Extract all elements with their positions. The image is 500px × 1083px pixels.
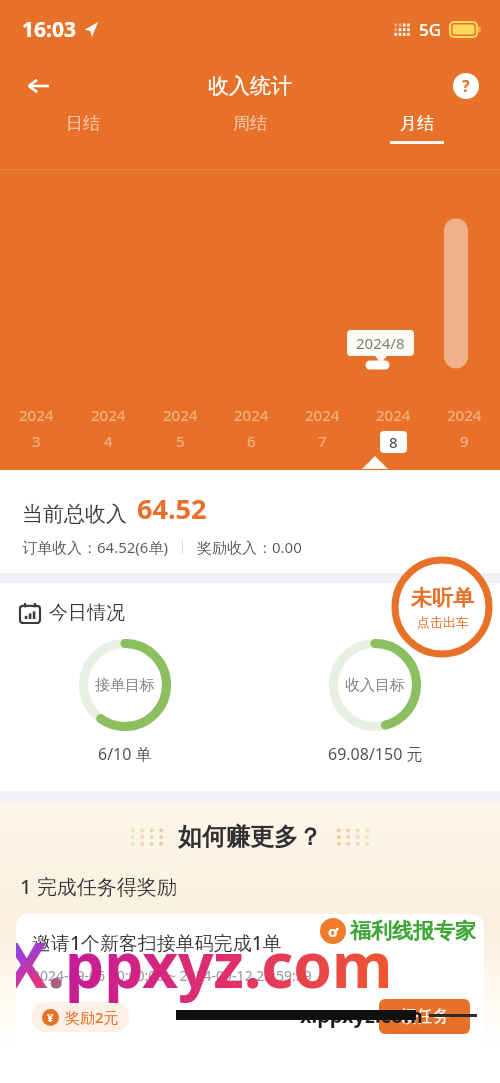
- button[interactable]: 2024: [72, 405, 144, 451]
- staticText: ppxyz.com: [65, 922, 393, 1006]
- staticText: 2024: [163, 405, 198, 425]
- button[interactable]: 2024: [429, 405, 500, 451]
- staticText: 领任务: [399, 1006, 450, 1027]
- button[interactable]: 邀请1个新客扫接单码完成1单: [16, 914, 484, 1048]
- staticText: ?: [462, 75, 470, 97]
- staticText: 7: [318, 431, 327, 451]
- staticText: 奖励2元: [65, 1007, 119, 1027]
- button[interactable]: 未听单: [390, 555, 494, 659]
- staticText: 接单目标: [95, 676, 155, 695]
- staticText: 点击出车: [417, 614, 469, 630]
- button[interactable]: 接单目标: [0, 639, 250, 765]
- staticText: 1 完成任务得奖励: [20, 873, 177, 900]
- button[interactable]: Back: [16, 64, 60, 108]
- staticText: 2024: [234, 405, 269, 425]
- staticText: 16:03: [22, 15, 76, 44]
- staticText: 月结: [400, 113, 434, 134]
- staticText: 9: [460, 431, 469, 451]
- staticText: 6/10 单: [98, 743, 152, 765]
- staticText: 5: [176, 431, 185, 451]
- button[interactable]: 月结: [333, 113, 500, 144]
- button[interactable]: 领任务: [399, 1006, 450, 1027]
- staticText: 日结: [66, 113, 100, 134]
- button[interactable]: 日结: [0, 113, 166, 144]
- staticText: ¥: [47, 1010, 54, 1025]
- staticText: 2024: [91, 405, 126, 425]
- button[interactable]: 2024: [287, 405, 358, 451]
- staticText: 邀请1个新客扫接单码完成1单: [32, 930, 282, 956]
- button[interactable]: Help: [446, 66, 486, 106]
- staticText: 8: [389, 432, 398, 452]
- button[interactable]: 2024: [358, 405, 429, 453]
- staticText: 奖励收入：0.00: [197, 537, 302, 557]
- staticText: 未听单: [411, 585, 474, 611]
- staticText: 收入目标: [345, 676, 405, 695]
- staticText: 69.08/150 元: [328, 743, 423, 765]
- staticText: 如何赚更多？: [178, 822, 322, 852]
- staticText: 收入统计: [208, 73, 292, 99]
- staticText: 今日情况: [49, 601, 125, 625]
- staticText: X.: [16, 922, 65, 1006]
- staticText: 2024: [305, 405, 340, 425]
- staticText: ơ: [328, 921, 339, 941]
- staticText: 2024: [376, 405, 411, 425]
- staticText: 2024: [19, 405, 54, 425]
- button[interactable]: 2024: [144, 405, 216, 451]
- staticText: 2024: [447, 405, 482, 425]
- staticText: 当前总收入: [22, 501, 127, 527]
- staticText: x.ppxyz.com: [300, 1002, 423, 1029]
- button[interactable]: 2024: [216, 405, 287, 451]
- staticText: 4: [104, 431, 113, 451]
- button[interactable]: 周结: [166, 113, 333, 144]
- staticText: 福利线报专家: [350, 918, 476, 944]
- button[interactable]: 收入目标: [250, 639, 500, 765]
- staticText: 周结: [233, 113, 267, 134]
- staticText: 6: [247, 431, 256, 451]
- staticText: 订单收入：64.52(6单): [22, 537, 168, 557]
- staticText: 2024/8: [356, 333, 405, 353]
- staticText: 5G: [419, 18, 442, 41]
- staticText: 2024-09-06 00:00:00 ~ 2024-09-12 23:59:5…: [32, 966, 312, 985]
- button[interactable]: 2024: [0, 405, 72, 451]
- staticText: 64.52: [137, 490, 207, 527]
- staticText: 3: [32, 431, 41, 451]
